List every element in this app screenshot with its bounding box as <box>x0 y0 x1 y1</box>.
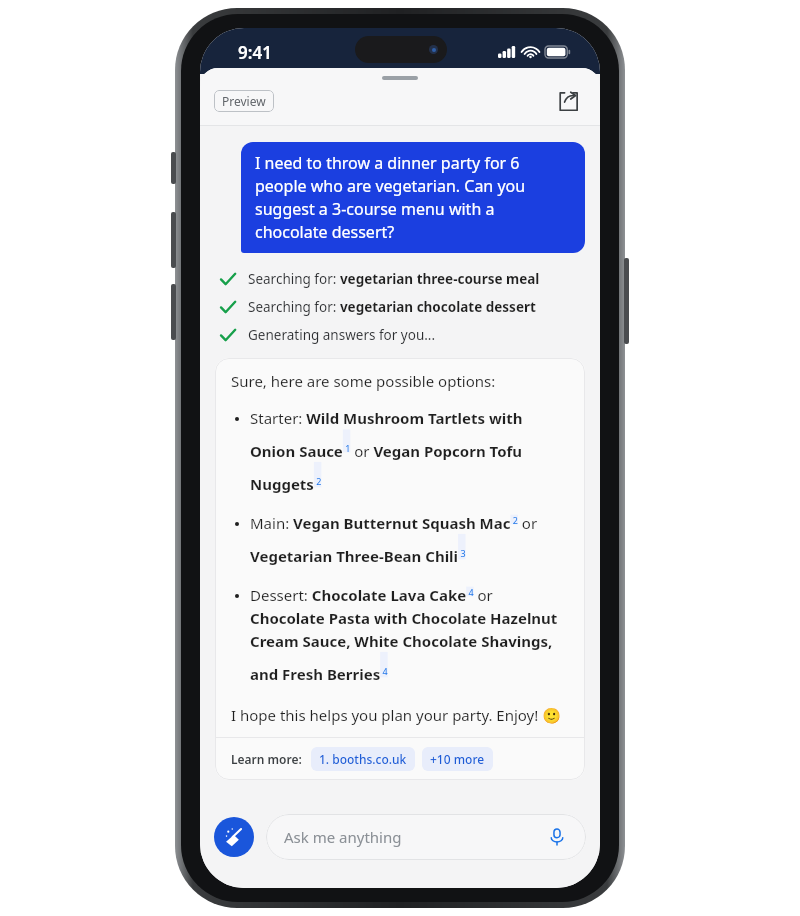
button[interactable]: Share <box>552 84 586 118</box>
staticText: I need to throw a dinner party for 6 peo… <box>255 152 571 243</box>
staticText: Searching for: vegetarian chocolate dess… <box>248 298 536 316</box>
staticText: Dessert: Chocolate Lava Cake 4 or Chocol… <box>250 585 571 684</box>
staticText: I hope this helps you plan your party. E… <box>231 705 561 725</box>
button[interactable]: Preview <box>214 90 274 112</box>
staticText: Generating answers for you... <box>248 326 436 344</box>
button[interactable]: +10 more <box>422 747 493 771</box>
staticText: 9:41 <box>238 41 272 64</box>
other: Voice input <box>546 826 568 848</box>
button[interactable]: I need to throw a dinner party for 6 peo… <box>241 142 585 253</box>
staticText: Learn more: <box>231 751 302 767</box>
staticText: 1. booths.co.uk <box>319 751 407 767</box>
staticText: +10 more <box>430 751 485 767</box>
staticText: Searching for: vegetarian three-course m… <box>248 270 540 288</box>
staticText: Preview <box>222 93 266 109</box>
staticText: Starter: Wild Mushroom Tartlets with Oni… <box>250 408 571 494</box>
button[interactable]: Magic compose <box>214 817 254 857</box>
staticText: Ask me anything <box>284 827 402 847</box>
button[interactable]: 1. booths.co.uk <box>311 747 415 771</box>
staticText: Sure, here are some possible options: <box>231 371 496 391</box>
button[interactable]: Ask me anything <box>266 814 586 860</box>
staticText: Main: Vegan Butternut Squash Mac 2 or Ve… <box>250 513 571 566</box>
